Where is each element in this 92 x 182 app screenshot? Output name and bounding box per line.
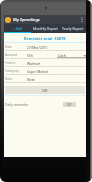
button[interactable]: Monthly Report <box>32 24 59 32</box>
button[interactable]: Yearly Report <box>59 24 86 32</box>
button[interactable]: Amount <box>5 51 86 59</box>
staticText: Cash <box>58 53 66 58</box>
staticText: OFF <box>67 103 72 107</box>
button[interactable]: Category <box>5 67 86 75</box>
staticText: Daily reminder <box>5 102 29 107</box>
staticText: Date <box>5 45 13 49</box>
button[interactable]: + Add <box>4 24 32 32</box>
button[interactable]: Paid to <box>5 59 86 67</box>
button[interactable]: Date <box>5 43 86 51</box>
staticText: My Spendings <box>13 17 40 22</box>
button[interactable]: More options <box>78 15 86 24</box>
staticText: Amount <box>5 53 18 57</box>
staticText: Monthly Report <box>33 26 58 31</box>
button[interactable]: Daily reminder <box>5 101 86 107</box>
staticText: Note <box>5 77 13 81</box>
staticText: + Add <box>13 26 23 31</box>
button[interactable]: Note <box>5 75 86 83</box>
staticText: Note <box>27 77 35 82</box>
staticText: Category <box>5 69 19 73</box>
staticText: OK <box>42 88 48 93</box>
staticText: Super Market <box>27 69 49 74</box>
button[interactable]: OK <box>5 86 85 94</box>
staticText: Yearly Report <box>62 26 84 31</box>
staticText: Reminder total $2878 <box>24 36 66 41</box>
staticText: 27/Mar/2015 <box>27 45 48 50</box>
staticText: Walmart <box>27 61 41 66</box>
button[interactable]: My Spendings <box>4 15 86 24</box>
staticText: Paid to <box>5 61 16 65</box>
button[interactable]: OFF <box>63 102 76 107</box>
staticText: 556 <box>27 53 33 58</box>
